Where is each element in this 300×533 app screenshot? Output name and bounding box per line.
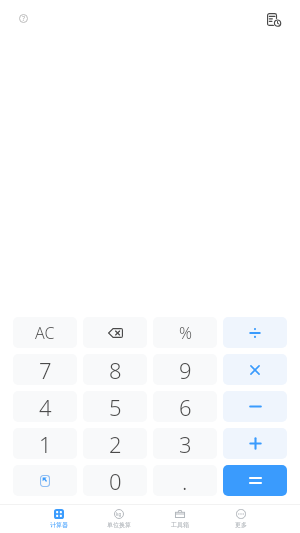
staticText: 6 xyxy=(179,392,192,422)
button[interactable]: Equals xyxy=(223,465,287,496)
button[interactable]: 更多 xyxy=(210,505,271,533)
button[interactable]: 2 xyxy=(83,428,147,459)
staticText: 8 xyxy=(109,355,122,385)
button[interactable]: AC xyxy=(13,317,77,348)
button[interactable]: 7 xyxy=(13,354,77,385)
staticText: 4 xyxy=(39,392,52,422)
staticText: AC xyxy=(35,322,55,344)
button[interactable]: 6 xyxy=(153,391,217,422)
staticText: 7 xyxy=(39,355,52,385)
button[interactable]: . xyxy=(153,465,217,496)
staticText: kg xyxy=(116,511,122,517)
button[interactable]: % xyxy=(153,317,217,348)
staticText: 工具箱 xyxy=(171,521,189,529)
staticText: 1 xyxy=(39,429,52,459)
button[interactable]: 8 xyxy=(83,354,147,385)
staticText: . xyxy=(182,466,188,496)
button[interactable]: 5 xyxy=(83,391,147,422)
staticText: 0 xyxy=(109,466,122,496)
button[interactable]: 9 xyxy=(153,354,217,385)
button[interactable]: History xyxy=(262,7,286,31)
staticText: 3 xyxy=(179,429,192,459)
button[interactable]: Insert formula xyxy=(13,465,77,496)
button[interactable]: 0 xyxy=(83,465,147,496)
button[interactable]: 工具箱 xyxy=(149,505,210,533)
staticText: 2 xyxy=(109,429,122,459)
staticText: 单位换算 xyxy=(107,521,131,529)
button[interactable]: Add xyxy=(223,428,287,459)
staticText: ? xyxy=(22,14,26,24)
button[interactable]: kg xyxy=(89,505,149,533)
button[interactable]: 1 xyxy=(13,428,77,459)
button[interactable]: Backspace xyxy=(83,317,147,348)
staticText: 5 xyxy=(109,392,122,422)
staticText: % xyxy=(179,322,192,344)
button[interactable]: 3 xyxy=(153,428,217,459)
button[interactable]: Multiply xyxy=(223,354,287,385)
staticText: 计算器 xyxy=(50,521,68,529)
button[interactable]: 4 xyxy=(13,391,77,422)
staticText: 9 xyxy=(179,355,192,385)
button[interactable]: Divide xyxy=(223,317,287,348)
button[interactable]: Help xyxy=(12,7,35,30)
button[interactable]: 计算器 xyxy=(29,505,89,533)
button[interactable]: Subtract xyxy=(223,391,287,422)
staticText: 更多 xyxy=(235,521,247,529)
